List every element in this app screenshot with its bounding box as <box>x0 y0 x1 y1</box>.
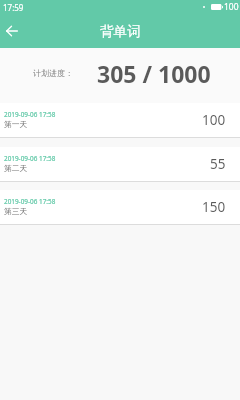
staticText: 计划进度： <box>33 68 73 78</box>
button[interactable]: 2019-09-06 17:58 <box>0 190 240 225</box>
staticText: 55 <box>210 155 226 173</box>
staticText: 100 <box>224 1 239 13</box>
staticText: 2019-09-06 17:58 <box>4 197 56 206</box>
staticText: 100 <box>202 111 226 129</box>
button[interactable]: 2019-09-06 17:58 <box>0 147 240 182</box>
staticText: 305 / 1000 <box>97 58 211 89</box>
staticText: 17:59 <box>3 2 24 13</box>
button[interactable]: Back <box>0 14 23 48</box>
staticText: 2019-09-06 17:58 <box>4 154 56 163</box>
button[interactable]: 2019-09-06 17:58 <box>0 103 240 138</box>
staticText: 第三天 <box>4 206 28 216</box>
staticText: 第一天 <box>4 119 28 129</box>
staticText: 背单词 <box>100 23 141 40</box>
staticText: 第二天 <box>4 163 28 173</box>
staticText: 2019-09-06 17:58 <box>4 110 56 119</box>
staticText: 150 <box>202 198 226 216</box>
